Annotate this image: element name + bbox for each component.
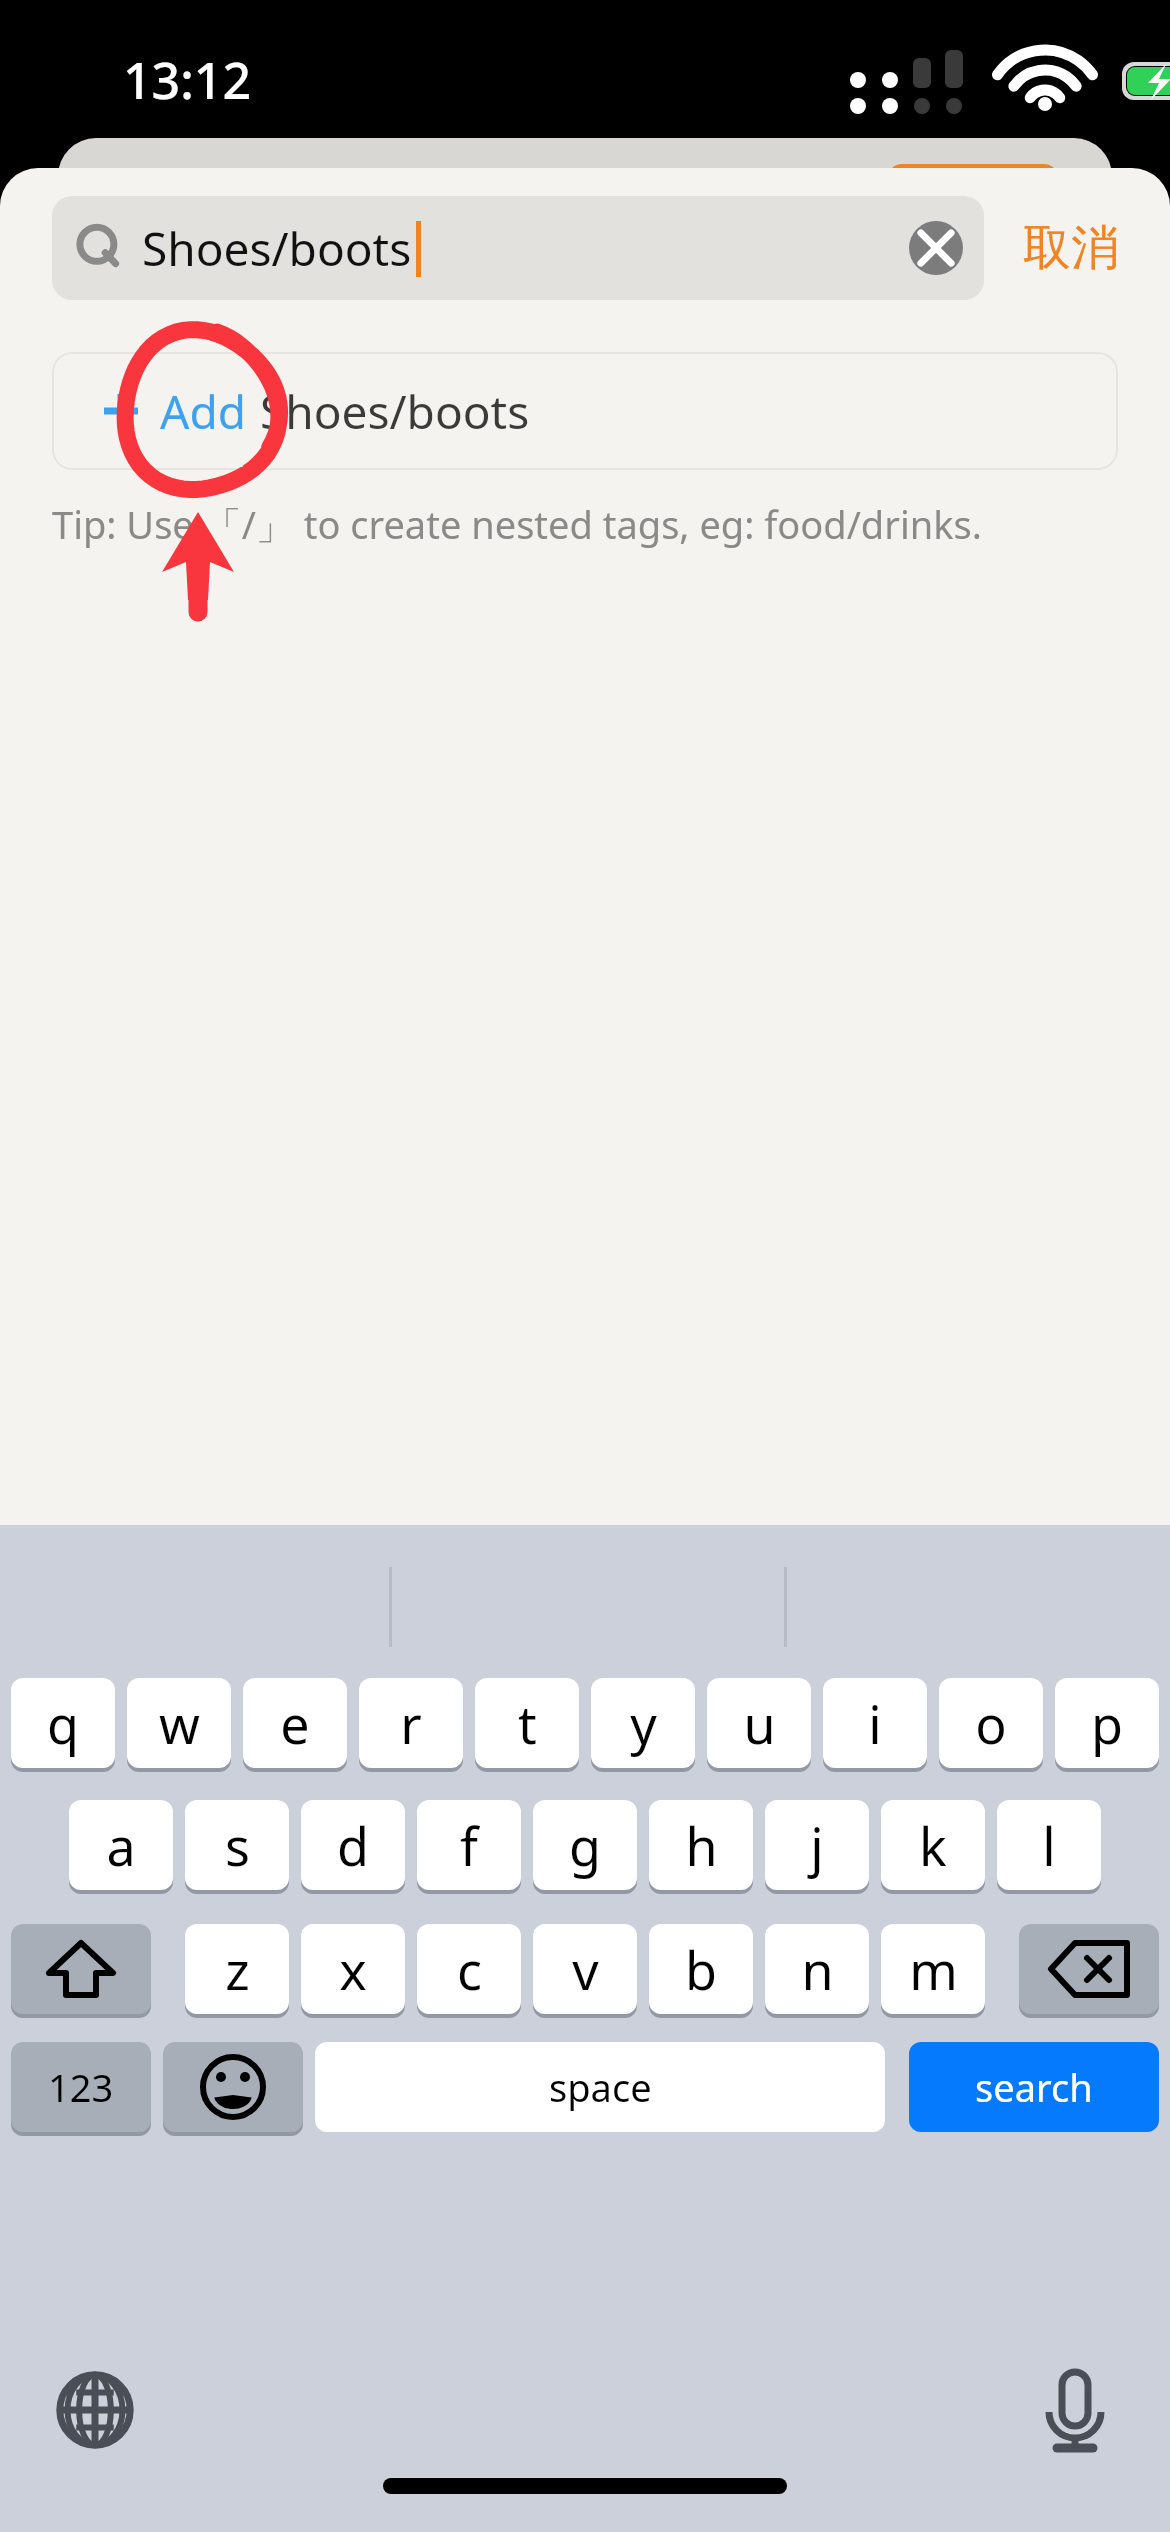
button[interactable]: i bbox=[823, 1678, 927, 1768]
staticText: v bbox=[572, 1934, 599, 2005]
staticText: t bbox=[518, 1688, 537, 1759]
staticText: 123 bbox=[48, 2061, 114, 2113]
button[interactable]: u bbox=[707, 1678, 811, 1768]
button[interactable]: t bbox=[475, 1678, 579, 1768]
button[interactable]: m bbox=[881, 1924, 985, 2014]
button[interactable]: w bbox=[127, 1678, 231, 1768]
button[interactable]: Numbers bbox=[11, 2042, 151, 2132]
button[interactable]: p bbox=[1055, 1678, 1159, 1768]
staticText: b bbox=[685, 1934, 717, 2005]
button[interactable]: l bbox=[997, 1800, 1101, 1890]
button[interactable]: Shift bbox=[11, 1924, 151, 2014]
staticText: s bbox=[225, 1810, 250, 1881]
button[interactable]: n bbox=[765, 1924, 869, 2014]
staticText: y bbox=[630, 1688, 657, 1759]
button[interactable]: q bbox=[11, 1678, 115, 1768]
staticText: z bbox=[225, 1934, 250, 2005]
staticText: Shoes/boots bbox=[142, 217, 412, 280]
staticText: Tip: Use 「/」 to create nested tags, eg: … bbox=[52, 498, 982, 550]
button[interactable]: v bbox=[533, 1924, 637, 2014]
button[interactable]: Backspace bbox=[1019, 1924, 1159, 2014]
button[interactable]: s bbox=[185, 1800, 289, 1890]
staticText: search bbox=[975, 2061, 1093, 2113]
staticText: o bbox=[975, 1688, 1007, 1759]
staticText: g bbox=[569, 1810, 601, 1881]
staticText: j bbox=[810, 1810, 824, 1881]
staticText: a bbox=[106, 1810, 136, 1881]
button[interactable]: Add bbox=[52, 352, 1118, 470]
staticText: h bbox=[685, 1810, 718, 1881]
staticText: 13:12 bbox=[123, 46, 251, 114]
button[interactable]: z bbox=[185, 1924, 289, 2014]
staticText: w bbox=[159, 1688, 200, 1759]
button[interactable]: Clear text bbox=[900, 212, 972, 284]
staticText: m bbox=[909, 1934, 958, 2005]
button[interactable]: f bbox=[417, 1800, 521, 1890]
staticText: 取消 bbox=[1023, 218, 1119, 278]
staticText: p bbox=[1091, 1688, 1123, 1759]
button[interactable]: search bbox=[909, 2042, 1159, 2132]
staticText: i bbox=[868, 1688, 882, 1759]
staticText: r bbox=[400, 1688, 422, 1759]
staticText: n bbox=[801, 1934, 834, 2005]
button[interactable]: a bbox=[69, 1800, 173, 1890]
button[interactable]: space bbox=[315, 2042, 885, 2132]
staticText: k bbox=[919, 1810, 947, 1881]
staticText: Add bbox=[160, 380, 246, 443]
button[interactable]: r bbox=[359, 1678, 463, 1768]
staticText: d bbox=[337, 1810, 369, 1881]
button[interactable]: h bbox=[649, 1800, 753, 1890]
button[interactable]: e bbox=[243, 1678, 347, 1768]
staticText: Shoes/boots bbox=[260, 380, 530, 443]
staticText: x bbox=[339, 1934, 367, 2005]
staticText: c bbox=[457, 1934, 482, 2005]
button[interactable]: k bbox=[881, 1800, 985, 1890]
staticText: l bbox=[1042, 1810, 1056, 1881]
staticText: space bbox=[549, 2061, 652, 2113]
staticText: u bbox=[743, 1688, 776, 1759]
button[interactable]: o bbox=[939, 1678, 1043, 1768]
button[interactable]: Dictate bbox=[1020, 2355, 1130, 2465]
button[interactable]: d bbox=[301, 1800, 405, 1890]
button[interactable]: g bbox=[533, 1800, 637, 1890]
button[interactable]: 取消 bbox=[996, 196, 1146, 300]
button[interactable]: y bbox=[591, 1678, 695, 1768]
button[interactable]: j bbox=[765, 1800, 869, 1890]
button[interactable]: x bbox=[301, 1924, 405, 2014]
staticText: q bbox=[47, 1688, 79, 1759]
staticText: e bbox=[280, 1688, 310, 1759]
button[interactable]: Emoji bbox=[163, 2042, 303, 2132]
button[interactable]: c bbox=[417, 1924, 521, 2014]
staticText: f bbox=[460, 1810, 478, 1881]
button[interactable]: Shoes/boots bbox=[52, 196, 984, 300]
button[interactable]: b bbox=[649, 1924, 753, 2014]
button[interactable]: Switch keyboard bbox=[40, 2355, 150, 2465]
